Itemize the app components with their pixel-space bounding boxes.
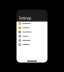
button[interactable]	[16, 42, 47, 47]
button[interactable]	[16, 38, 47, 42]
staticText: Settings	[18, 15, 31, 20]
button[interactable]	[16, 34, 47, 38]
button[interactable]	[16, 21, 47, 26]
button[interactable]	[16, 26, 47, 30]
button[interactable]	[16, 30, 47, 34]
